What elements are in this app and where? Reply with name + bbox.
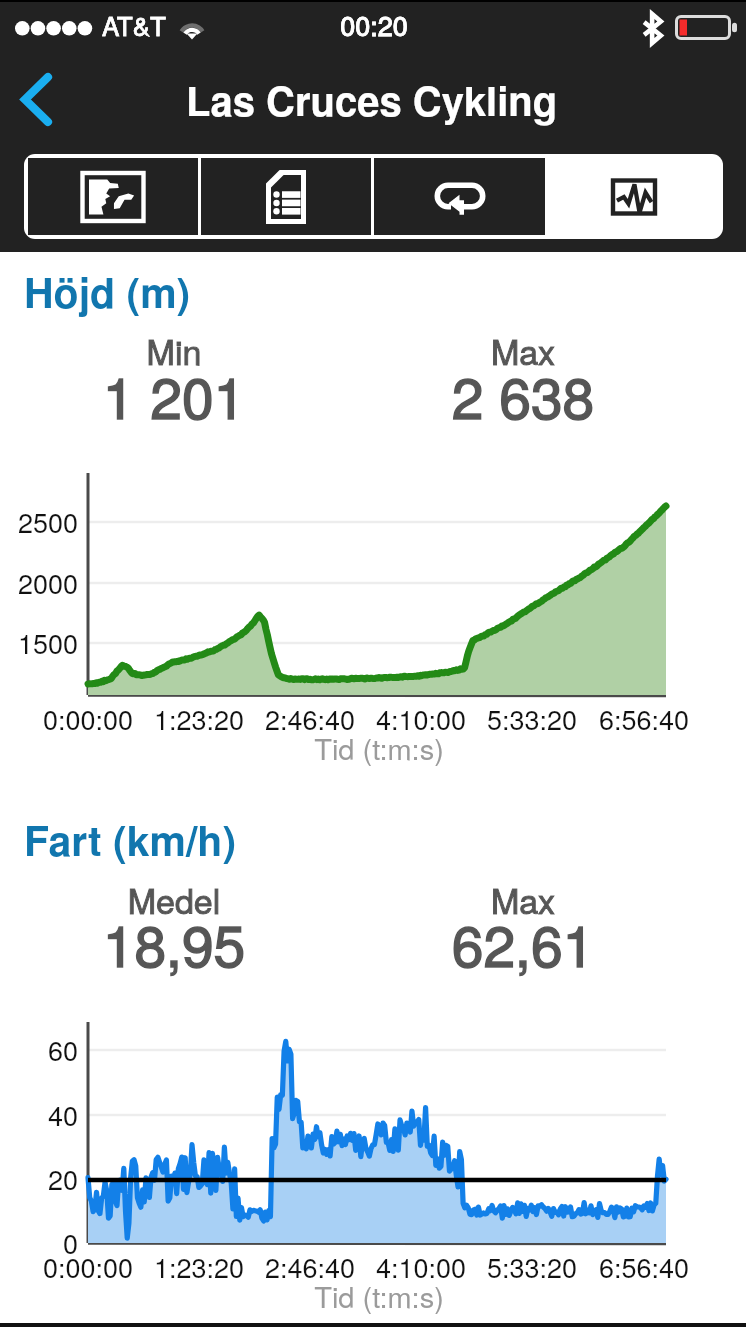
staticText: Höjd (m) [24, 262, 191, 321]
staticText: Max [353, 326, 693, 375]
staticText: 4:10:00 [331, 699, 511, 738]
button[interactable]: Details [201, 158, 371, 235]
staticText: Min [4, 326, 344, 375]
staticText: Medel [4, 875, 344, 924]
button[interactable]: Map [28, 158, 198, 235]
staticText: 60 [0, 1030, 78, 1069]
staticText: 00:20 [274, 5, 474, 44]
staticText: 40 [0, 1095, 78, 1134]
staticText: 18,95 [4, 902, 344, 984]
staticText: 5:33:20 [442, 1247, 622, 1286]
staticText: 0:00:00 [0, 699, 178, 738]
staticText: 6:56:40 [554, 699, 734, 738]
staticText: 1 201 [4, 354, 344, 436]
staticText: 2000 [0, 563, 78, 602]
button[interactable]: Back [2, 68, 68, 134]
staticText: 1500 [0, 623, 78, 662]
staticText: 5:33:20 [442, 699, 622, 738]
staticText: Tid (t:m:s) [6, 727, 746, 769]
staticText: Max [353, 326, 693, 375]
staticText: 1:23:20 [109, 699, 289, 738]
staticText: Max [353, 875, 693, 924]
staticText: 2:46:40 [220, 1247, 400, 1286]
staticText: 2 638 [353, 354, 693, 436]
staticText: Las Cruces Cykling [186, 71, 558, 128]
staticText: 18,95 [4, 902, 344, 984]
button[interactable]: Laps [374, 158, 545, 235]
staticText: 00:20 [274, 5, 474, 44]
button[interactable]: Charts [548, 158, 719, 235]
staticText: 62,61 [353, 902, 693, 984]
staticText: 0 [0, 1223, 78, 1262]
staticText: Max [353, 875, 693, 924]
staticText: 6:56:40 [554, 1247, 734, 1286]
staticText: 2:46:40 [220, 699, 400, 738]
staticText: AT&T [102, 6, 202, 43]
staticText: 1 201 [4, 354, 344, 436]
staticText: Min [4, 326, 344, 375]
staticText: Medel [4, 875, 344, 924]
staticText: Tid (t:m:s) [6, 1275, 746, 1317]
staticText: 0:00:00 [0, 1247, 178, 1286]
staticText: 2 638 [353, 354, 693, 436]
staticText: Fart (km/h) [24, 810, 237, 869]
staticText: 1:23:20 [109, 1247, 289, 1286]
staticText: 20 [0, 1159, 78, 1198]
staticText: 62,61 [353, 902, 693, 984]
staticText: 4:10:00 [331, 1247, 511, 1286]
staticText: AT&T [102, 6, 202, 43]
staticText: 2500 [0, 502, 78, 541]
